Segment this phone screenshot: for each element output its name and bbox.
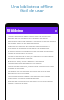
staticText: Las actualizaciones llegan cada semana c… <box>8 75 56 79</box>
staticText: Ajusta el tamano de la letra, el margen … <box>8 55 56 59</box>
staticText: Disfruta de una lectura sin anuncios y c… <box>8 80 56 84</box>
button[interactable]: Mi biblioteca <box>6 27 58 34</box>
staticText: Organiza tus lecturas en estantes person… <box>8 45 56 49</box>
staticText: Una biblioteca offline fácil de usar <box>0 4 64 14</box>
staticText: Busca por autor, titulo o genero y encue… <box>8 60 56 64</box>
staticText: Descarga el libro que quieras y continua… <box>8 40 56 44</box>
staticText: Mi biblioteca <box>7 29 23 33</box>
staticText: Marca pasajes favoritos, anade notas y e… <box>8 65 56 69</box>
staticText: Nuestra biblioteca digital reune miles d… <box>8 35 56 39</box>
staticText: El modo nocturno protege tu vista durant… <box>8 50 56 54</box>
staticText: Comparte con tus amigos las obras que ma… <box>8 70 56 74</box>
